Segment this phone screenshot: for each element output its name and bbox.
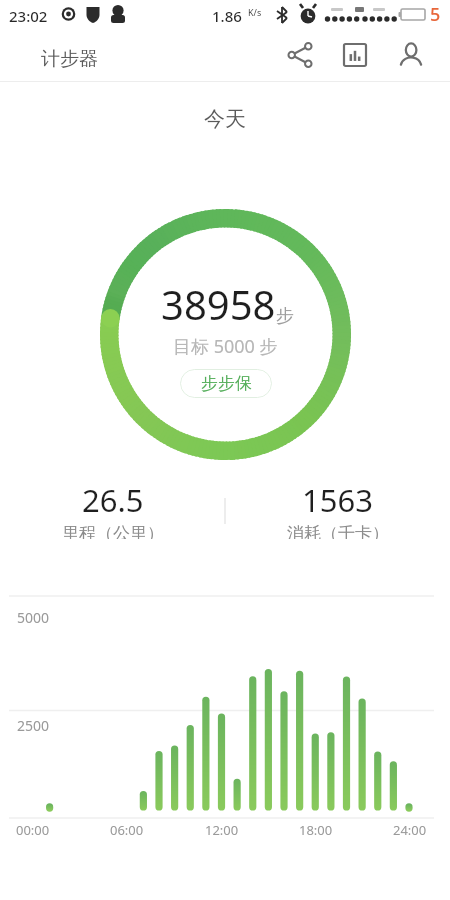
staticText: 今天	[0, 106, 450, 132]
staticText: 1563	[302, 479, 373, 521]
staticText: 18:00	[299, 821, 333, 839]
button[interactable]: Profile	[389, 33, 433, 77]
staticText: 5000	[17, 608, 50, 627]
staticText: 12:00	[205, 821, 239, 839]
staticText: 00:00	[16, 821, 50, 839]
staticText: 1.86	[212, 6, 242, 26]
staticText: K/s	[248, 6, 262, 18]
staticText: 2500	[17, 716, 50, 735]
staticText: 消耗（千卡）	[287, 523, 389, 539]
button[interactable]: 步步保	[180, 369, 272, 398]
staticText: 23:02	[9, 6, 48, 26]
staticText: 26.5	[82, 479, 144, 521]
button[interactable]: Statistics	[333, 33, 377, 77]
staticText: 5	[430, 2, 441, 27]
staticText: 里程（公里）	[62, 523, 164, 539]
staticText: 计步器	[41, 47, 98, 71]
staticText: 38958	[161, 277, 276, 331]
staticText: 06:00	[110, 821, 144, 839]
staticText: 步步保	[201, 373, 252, 394]
staticText: 步	[276, 305, 294, 328]
button[interactable]: Share	[278, 33, 322, 77]
staticText: 目标 5000 步	[173, 334, 278, 359]
staticText: 24:00	[393, 821, 427, 839]
